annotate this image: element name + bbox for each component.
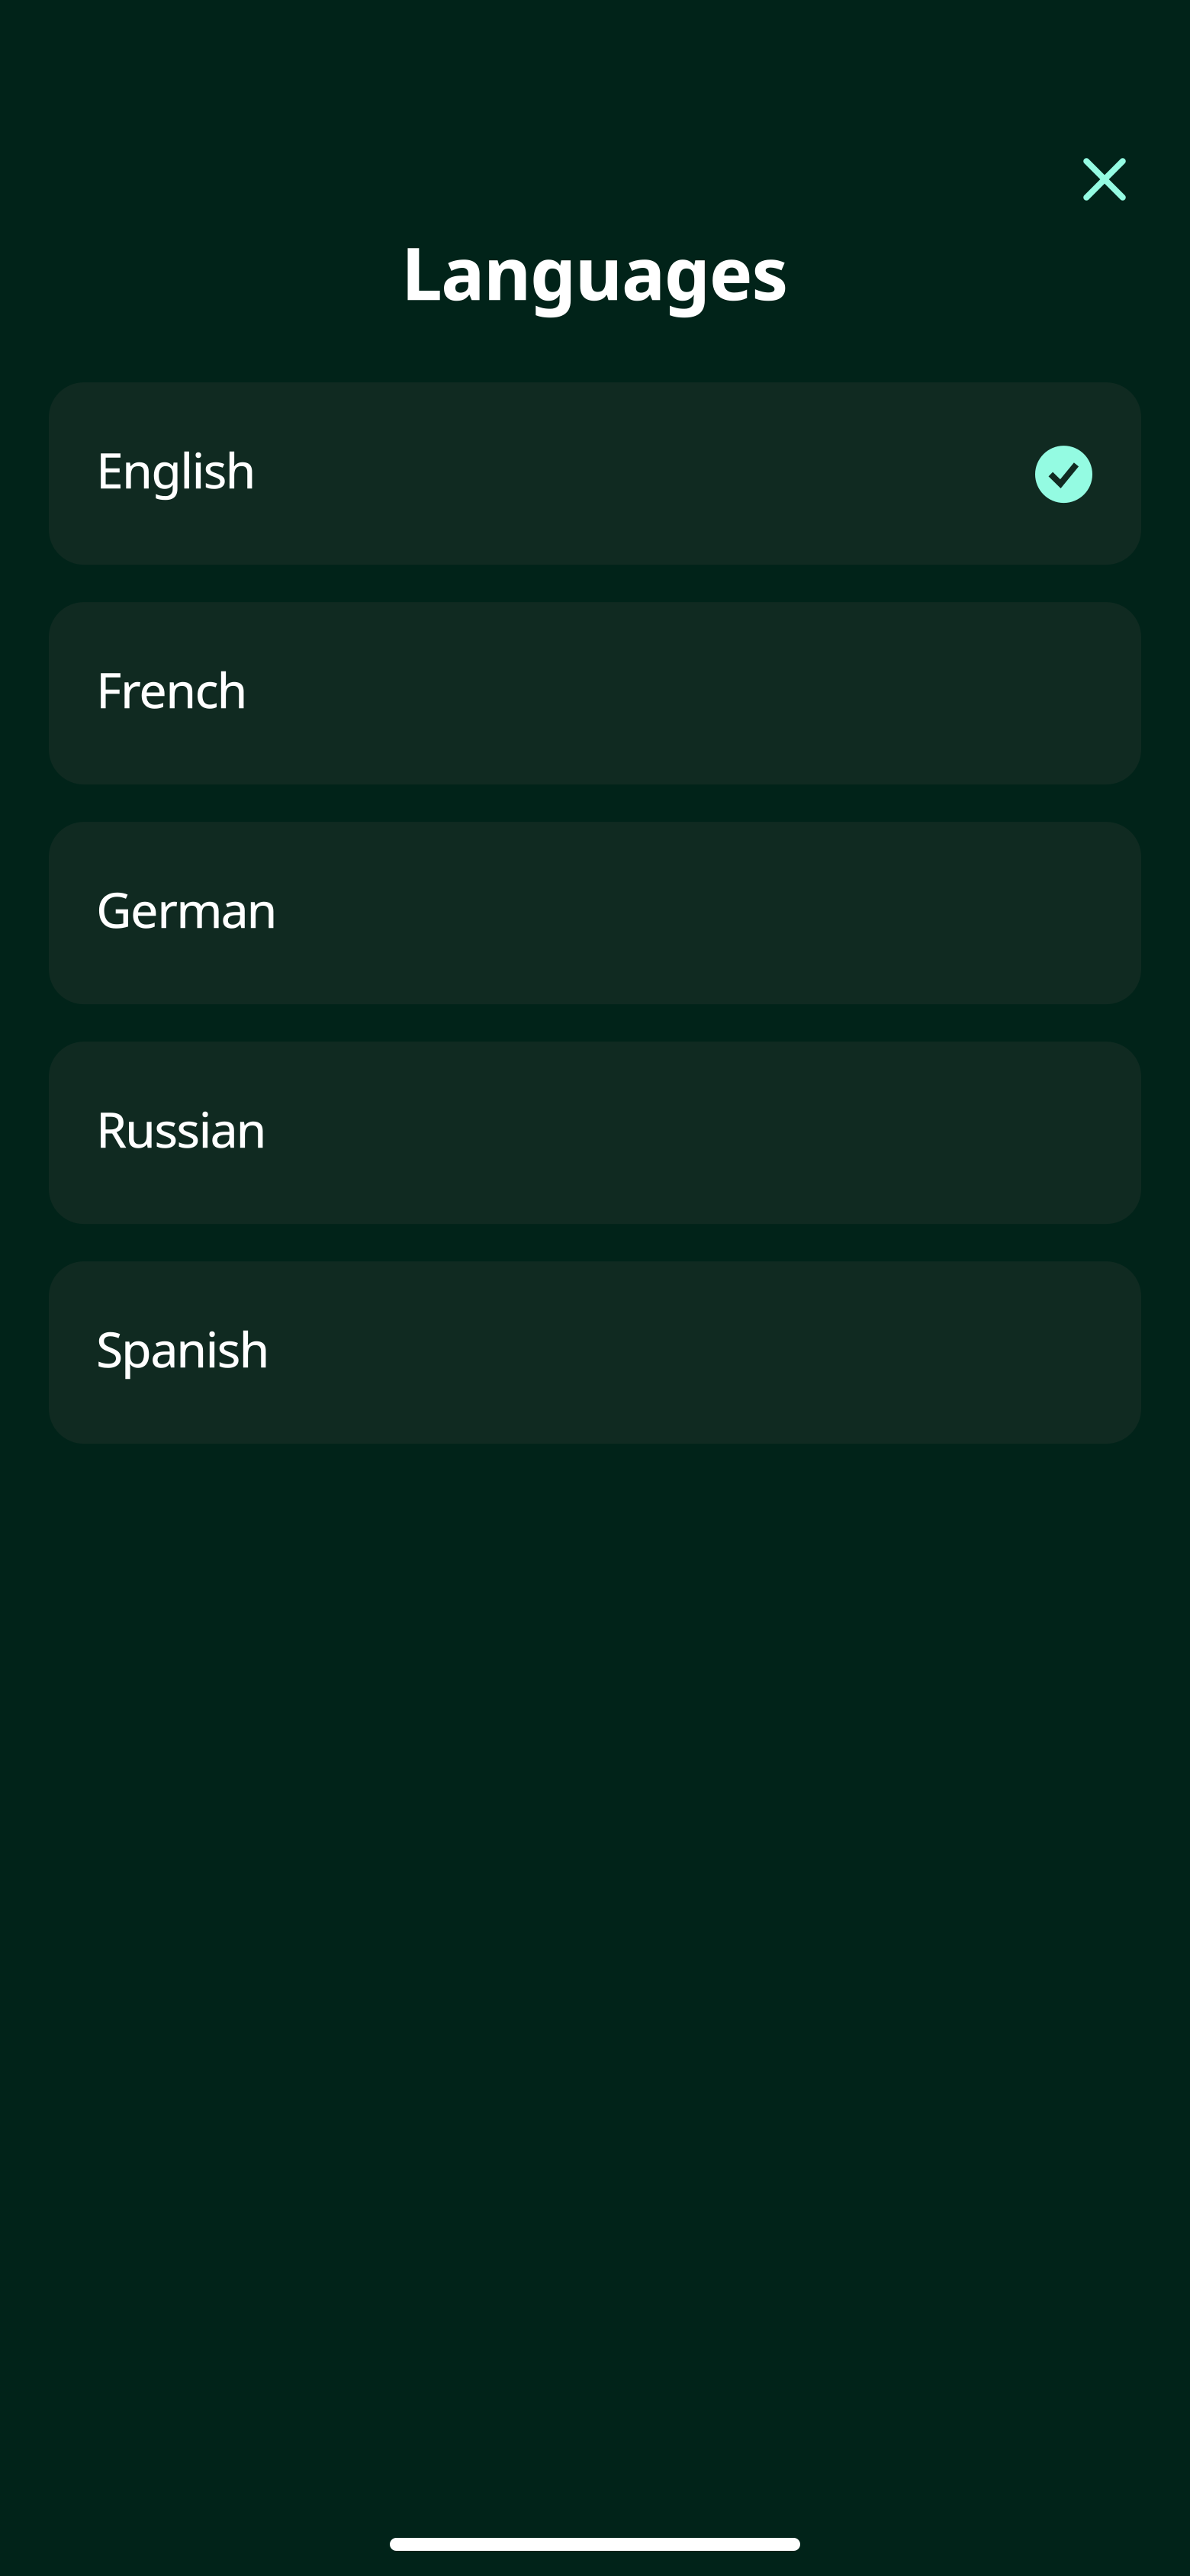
button[interactable]: French — [49, 602, 1141, 784]
staticText: German — [96, 876, 277, 942]
staticText: English — [96, 436, 256, 503]
staticText: Russian — [96, 1095, 267, 1162]
staticText: Spanish — [96, 1315, 270, 1382]
staticText: Languages — [402, 223, 788, 321]
staticText: French — [96, 656, 248, 723]
button[interactable]: Spanish — [49, 1261, 1141, 1444]
button[interactable]: Close — [1063, 137, 1147, 221]
button[interactable]: English — [49, 382, 1141, 565]
button[interactable]: Russian — [49, 1042, 1141, 1224]
button[interactable]: German — [49, 822, 1141, 1004]
